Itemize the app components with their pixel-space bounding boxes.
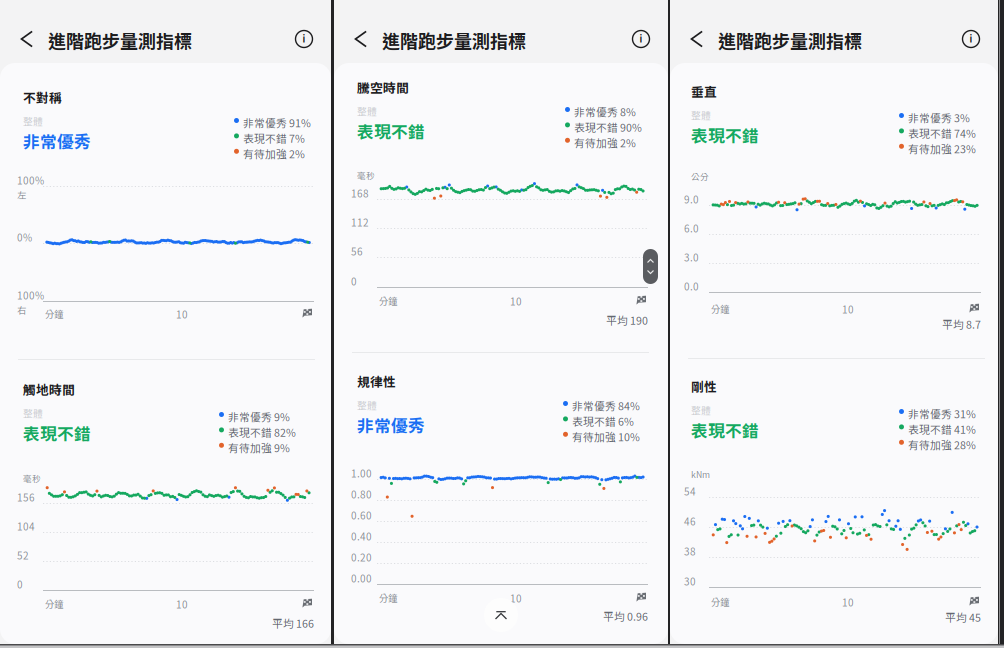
staticText: 0.60	[351, 508, 372, 522]
staticText: 0.0	[684, 279, 699, 293]
staticText: 168	[351, 186, 369, 200]
staticText: 100%	[17, 288, 44, 302]
staticText: 表現不錯	[691, 418, 759, 442]
button[interactable]: Information	[284, 19, 324, 59]
staticText: 156	[17, 490, 35, 504]
staticText: 0.40	[351, 529, 372, 543]
staticText: 平均 8.7	[942, 316, 981, 332]
staticText: 公分	[691, 170, 709, 182]
staticText: 剛性	[691, 377, 717, 395]
staticText: 3.0	[684, 250, 699, 264]
staticText: 非常優秀 31%	[908, 406, 976, 421]
staticText: 6.0	[684, 221, 699, 235]
staticText: 0%	[17, 230, 32, 244]
staticText: 表現不錯	[23, 421, 91, 445]
staticText: 觸地時間	[23, 380, 75, 398]
staticText: 10	[842, 302, 854, 316]
staticText: 分鐘	[711, 302, 729, 315]
staticText: 表現不錯 6%	[572, 413, 634, 429]
staticText: 垂直	[691, 82, 717, 100]
staticText: 54	[684, 484, 696, 498]
staticText: 右	[17, 303, 26, 316]
staticText: 0.20	[351, 550, 372, 564]
button[interactable]: Back	[7, 17, 47, 61]
staticText: 表現不錯 7%	[243, 130, 305, 146]
staticText: i	[639, 32, 642, 45]
staticText: 整體	[23, 114, 43, 128]
staticText: 毫秒	[23, 472, 41, 484]
staticText: 104	[17, 519, 35, 533]
staticText: 有待加強 10%	[572, 429, 640, 444]
staticText: 0.80	[351, 487, 372, 501]
staticText: 有待加強 28%	[908, 437, 976, 452]
staticText: 不對稱	[23, 88, 62, 106]
staticText: kNm	[691, 468, 710, 480]
staticText: 非常優秀	[23, 129, 91, 153]
staticText: 非常優秀	[357, 413, 425, 437]
staticText: i	[969, 32, 972, 45]
staticText: 表現不錯	[691, 123, 759, 147]
staticText: 非常優秀 84%	[572, 398, 640, 413]
staticText: 有待加強 9%	[228, 440, 290, 455]
staticText: 整體	[691, 403, 711, 417]
staticText: 進階跑步量測指標	[48, 27, 192, 53]
staticText: 有待加強 2%	[243, 146, 305, 161]
staticText: 0	[17, 577, 23, 591]
staticText: 整體	[357, 104, 377, 118]
staticText: 毫秒	[357, 169, 375, 181]
staticText: 平均 0.96	[603, 608, 648, 624]
staticText: 9.0	[684, 192, 699, 206]
staticText: 表現不錯 90%	[574, 119, 642, 135]
staticText: 有待加強 23%	[908, 141, 976, 156]
button[interactable]: Information	[621, 19, 661, 59]
staticText: 整體	[357, 398, 377, 412]
staticText: 112	[351, 215, 369, 229]
staticText: 46	[684, 514, 696, 528]
staticText: 進階跑步量測指標	[718, 27, 862, 53]
staticText: 30	[684, 574, 696, 588]
staticText: 10	[176, 597, 188, 611]
staticText: 10	[510, 294, 522, 308]
staticText: 100%	[17, 173, 44, 187]
staticText: 非常優秀 91%	[243, 115, 311, 130]
staticText: 分鐘	[45, 597, 63, 610]
staticText: 分鐘	[379, 591, 397, 604]
staticText: 表現不錯	[357, 119, 425, 143]
staticText: 10	[176, 307, 188, 321]
staticText: 10	[842, 595, 854, 609]
staticText: 進階跑步量測指標	[382, 27, 526, 53]
staticText: 0	[351, 274, 357, 288]
staticText: 平均 190	[606, 312, 648, 328]
staticText: 左	[17, 188, 26, 201]
staticText: 整體	[691, 108, 711, 122]
button[interactable]: Back	[677, 17, 717, 61]
staticText: 分鐘	[711, 595, 729, 608]
staticText: 騰空時間	[357, 78, 409, 96]
staticText: i	[302, 32, 305, 45]
staticText: 56	[351, 244, 363, 258]
staticText: 非常優秀 8%	[574, 104, 636, 119]
staticText: 52	[17, 548, 29, 562]
staticText: 整體	[23, 406, 43, 420]
staticText: 有待加強 2%	[574, 135, 636, 150]
staticText: 1.00	[351, 466, 372, 480]
staticText: 表現不錯 82%	[228, 424, 296, 440]
staticText: 表現不錯 74%	[908, 125, 976, 141]
staticText: 0.00	[351, 571, 372, 585]
staticText: 10	[510, 591, 522, 605]
staticText: 平均 166	[272, 615, 314, 631]
staticText: 38	[684, 544, 696, 558]
staticText: 分鐘	[379, 294, 397, 307]
staticText: 非常優秀 9%	[228, 409, 290, 424]
button[interactable]: Back	[341, 17, 381, 61]
staticText: 規律性	[357, 372, 396, 390]
staticText: 平均 45	[945, 609, 981, 625]
staticText: 表現不錯 41%	[908, 421, 976, 437]
button[interactable]: Information	[951, 19, 991, 59]
staticText: 非常優秀 3%	[908, 110, 970, 125]
button[interactable]: Scroll to top	[483, 597, 519, 633]
staticText: 分鐘	[45, 307, 63, 320]
